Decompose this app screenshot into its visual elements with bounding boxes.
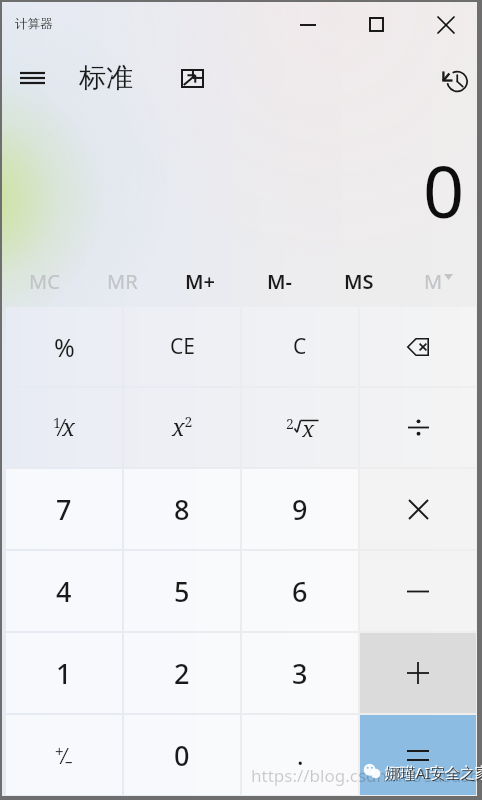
button[interactable]: 0 — [124, 715, 240, 795]
button[interactable]: 1 — [6, 633, 122, 713]
button[interactable]: C — [242, 307, 358, 386]
button[interactable]: Close — [411, 2, 480, 47]
button[interactable]: 8 — [124, 469, 240, 549]
button[interactable]: M- — [240, 251, 319, 306]
staticText: 9 — [292, 491, 308, 528]
button[interactable]: Minimize — [273, 2, 342, 47]
staticText: % — [54, 330, 75, 364]
button[interactable]: Memory list — [398, 251, 477, 306]
button[interactable]: Multiply — [360, 469, 476, 549]
button[interactable]: Keep on top — [169, 54, 215, 102]
staticText: M+ — [185, 268, 216, 295]
staticText: +⁄– — [55, 740, 73, 771]
button[interactable]: Menu — [9, 54, 55, 102]
button[interactable]: 7 — [6, 469, 122, 549]
staticText: 娜瑾AI安全之家 — [386, 763, 482, 783]
button[interactable]: 4 — [6, 551, 122, 631]
button[interactable]: 2 — [242, 388, 358, 467]
staticText: 1⁄x — [53, 411, 75, 442]
staticText: 3 — [292, 655, 308, 692]
staticText: 5 — [174, 573, 190, 610]
staticText: C — [293, 332, 307, 361]
staticText: 娜瑾AI安全之家 — [385, 762, 482, 782]
staticText: 2 — [174, 655, 190, 692]
staticText: https://blog.csdn.net/sdsdsdsd — [251, 764, 482, 787]
staticText: M — [424, 268, 443, 295]
button[interactable]: Add — [360, 633, 476, 713]
staticText: 2 — [286, 414, 294, 433]
staticText: 计算器 — [15, 16, 53, 32]
button[interactable]: 1⁄x — [6, 388, 122, 467]
staticText: MR — [107, 268, 138, 295]
button[interactable]: 标准 — [79, 54, 133, 102]
staticText: x — [302, 413, 315, 439]
staticText: 4 — [56, 573, 72, 610]
button[interactable]: Subtract — [360, 551, 476, 631]
button[interactable]: % — [6, 307, 122, 386]
button[interactable]: Backspace — [360, 307, 476, 386]
button[interactable]: MC — [5, 251, 83, 306]
button[interactable]: 2 — [124, 633, 240, 713]
button[interactable]: 5 — [124, 551, 240, 631]
staticText: MC — [29, 268, 60, 295]
staticText: M- — [267, 268, 292, 295]
button[interactable]: History — [432, 57, 478, 105]
staticText: CE — [170, 332, 195, 361]
button[interactable]: x2 — [124, 388, 240, 467]
staticText: 6 — [292, 573, 308, 610]
button[interactable]: Divide — [360, 388, 476, 467]
button[interactable]: 3 — [242, 633, 358, 713]
staticText: 0 — [174, 737, 190, 774]
staticText: 1 — [56, 655, 72, 692]
button[interactable]: +⁄– — [6, 715, 122, 795]
staticText: 7 — [56, 491, 72, 528]
staticText: 标准 — [79, 61, 133, 95]
button[interactable]: MS — [319, 251, 398, 306]
button[interactable]: . — [242, 715, 358, 795]
staticText: x2 — [172, 411, 193, 442]
button[interactable]: Equals — [360, 715, 476, 795]
staticText: 8 — [174, 491, 190, 528]
button[interactable]: CE — [124, 307, 240, 386]
button[interactable]: 9 — [242, 469, 358, 549]
button[interactable]: M+ — [161, 251, 240, 306]
staticText: . — [297, 739, 304, 772]
staticText: 0 — [423, 141, 465, 239]
button[interactable]: MR — [83, 251, 161, 306]
button[interactable]: 6 — [242, 551, 358, 631]
button[interactable]: Maximize — [342, 2, 411, 47]
staticText: MS — [344, 268, 374, 295]
